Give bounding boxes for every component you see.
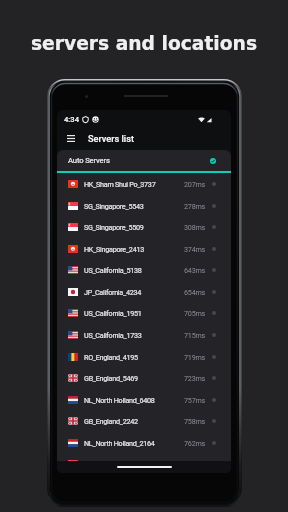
staticText: Servers list <box>88 133 134 144</box>
button[interactable]: SG_Singapore_5543 <box>57 195 231 216</box>
button[interactable]: HK_Singapore_2413 <box>57 238 231 259</box>
staticText: 715ms <box>184 331 206 339</box>
staticText: RO_England_4195 <box>84 353 138 361</box>
button[interactable]: SG_Singapore_3382 <box>57 453 231 473</box>
staticText: HK_Singapore_2413 <box>84 245 144 253</box>
staticText: NL_North Holland_2164 <box>84 439 155 447</box>
staticText: SG_Singapore_5509 <box>84 223 144 231</box>
button[interactable]: NL_North Holland_2164 <box>57 432 231 453</box>
button[interactable]: US_California_1951 <box>57 302 231 324</box>
staticText: SG_Singapore_5543 <box>84 202 144 210</box>
staticText: NL_North Holland_6408 <box>84 396 155 404</box>
staticText: 4:34 <box>64 115 79 124</box>
staticText: 207ms <box>184 180 206 188</box>
button[interactable]: Open navigation drawer <box>61 129 80 148</box>
staticText: 374ms <box>184 245 206 253</box>
staticText: 758ms <box>184 417 206 425</box>
staticText: 781ms <box>184 460 206 468</box>
staticText: 308ms <box>184 223 206 231</box>
staticText: 719ms <box>184 353 206 361</box>
button[interactable]: GB_England_5469 <box>57 367 231 389</box>
staticText: 757ms <box>184 396 206 404</box>
staticText: US_California_1951 <box>84 309 142 317</box>
button[interactable]: Auto Servers <box>57 150 231 173</box>
staticText: US_California_5138 <box>84 266 142 274</box>
staticText: Auto Servers <box>68 156 110 165</box>
staticText: 643ms <box>184 266 206 274</box>
button[interactable]: RO_England_4195 <box>57 346 231 367</box>
staticText: GB_England_2242 <box>84 417 138 425</box>
button[interactable]: HK_Sham Shui Po_3737 <box>57 173 231 195</box>
staticText: 278ms <box>184 202 206 210</box>
staticText: JP_California_4234 <box>84 288 142 296</box>
staticText: 654ms <box>184 288 206 296</box>
button[interactable]: US_California_5138 <box>57 259 231 281</box>
staticText: HK_Sham Shui Po_3737 <box>84 180 156 188</box>
staticText: servers and locations <box>0 33 288 55</box>
staticText: US_California_1733 <box>84 331 142 339</box>
button[interactable]: SG_Singapore_5509 <box>57 216 231 238</box>
staticText: GB_England_5469 <box>84 374 138 382</box>
staticText: 762ms <box>184 439 206 447</box>
button[interactable]: GB_England_2242 <box>57 410 231 432</box>
staticText: SG_Singapore_3382 <box>84 460 144 468</box>
button[interactable]: JP_California_4234 <box>57 281 231 302</box>
button[interactable]: NL_North Holland_6408 <box>57 389 231 410</box>
button[interactable]: US_California_1733 <box>57 324 231 346</box>
staticText: 705ms <box>184 309 206 317</box>
staticText: 723ms <box>184 374 206 382</box>
